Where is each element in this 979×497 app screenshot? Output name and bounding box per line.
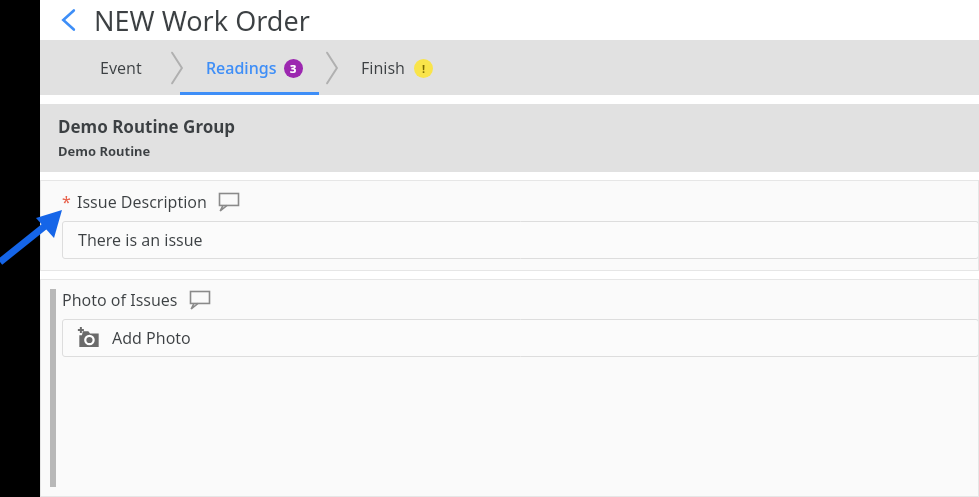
button[interactable]: Event: [100, 40, 142, 95]
staticText: Demo Routine Group: [58, 115, 236, 138]
button[interactable]: Comment: [219, 193, 239, 211]
staticText: Finish: [361, 57, 406, 79]
staticText: NEW Work Order: [94, 2, 310, 39]
staticText: 3: [290, 61, 297, 76]
button[interactable]: There is an issue: [62, 221, 979, 259]
staticText: Issue Description: [77, 191, 207, 213]
staticText: Add Photo: [112, 327, 191, 349]
button[interactable]: Finish: [361, 40, 433, 95]
staticText: *: [62, 191, 71, 213]
button[interactable]: Comment: [190, 291, 210, 309]
button[interactable]: Add Photo: [62, 319, 979, 357]
button[interactable]: Back: [54, 5, 84, 35]
staticText: Event: [100, 57, 142, 79]
staticText: Demo Routine: [58, 142, 151, 160]
staticText: Photo of Issues: [62, 289, 178, 311]
staticText: !: [422, 61, 426, 76]
button[interactable]: Readings: [206, 40, 303, 95]
staticText: Readings: [206, 57, 277, 79]
staticText: There is an issue: [78, 229, 203, 251]
